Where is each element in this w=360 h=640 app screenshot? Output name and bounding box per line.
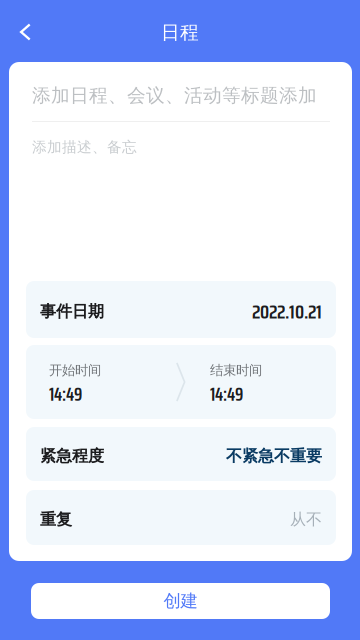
staticText: 添加日程、会议、活动等标题添加 — [32, 84, 317, 107]
staticText: 紧急程度 — [40, 446, 104, 466]
staticText: 事件日期 — [40, 302, 104, 321]
button[interactable]: 开始时间 — [26, 345, 336, 419]
staticText: 日程 — [161, 21, 199, 44]
button[interactable]: 紧急程度 — [26, 427, 336, 481]
staticText: 14:49 — [210, 378, 243, 409]
staticText: 2022.10.21 — [252, 296, 322, 327]
staticText: 重复 — [40, 510, 72, 529]
staticText: 从不 — [290, 510, 322, 529]
staticText: 创建 — [163, 590, 197, 612]
staticText: 14:49 — [49, 378, 82, 409]
button[interactable]: 事件日期 — [26, 281, 336, 338]
staticText: 开始时间 — [49, 362, 101, 378]
staticText: 结束时间 — [210, 362, 262, 378]
staticText: 不紧急不重要 — [226, 446, 322, 466]
button[interactable]: 创建 — [31, 583, 330, 619]
staticText: 添加描述、备忘 — [32, 138, 137, 156]
button[interactable]: 重复 — [26, 490, 336, 545]
button[interactable]: Back — [0, 9, 44, 53]
